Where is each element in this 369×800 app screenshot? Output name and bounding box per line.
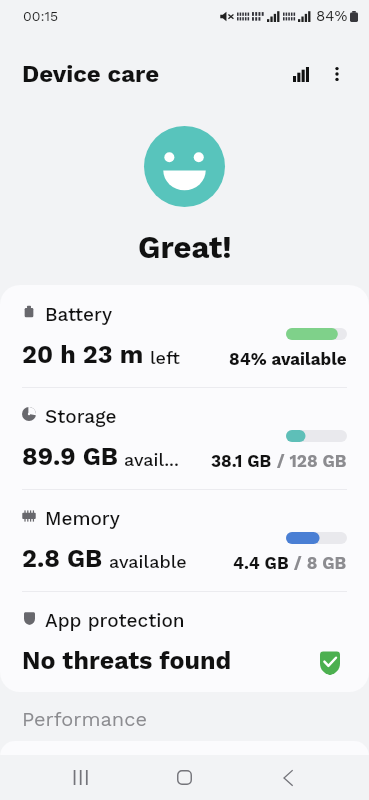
staticText: available (109, 551, 187, 572)
staticText: Memory (45, 507, 120, 529)
button[interactable]: App protection details (0, 591, 369, 692)
button[interactable]: Storage details (0, 387, 369, 489)
button[interactable]: Home (152, 755, 217, 798)
staticText: Storage (45, 405, 117, 427)
staticText: App protection (45, 609, 185, 631)
button[interactable]: Battery details (0, 285, 369, 387)
button[interactable]: Recent apps (48, 755, 113, 798)
staticText: 84% available (229, 349, 347, 369)
staticText: / 8 GB (289, 553, 347, 573)
staticText: Great! (138, 229, 232, 265)
staticText: 20 h 23 m (22, 340, 144, 369)
button[interactable]: More options (319, 56, 355, 92)
staticText: No threats found (22, 646, 232, 675)
staticText: avail... (124, 449, 179, 470)
button[interactable]: Memory details (0, 489, 369, 591)
staticText: Performance (22, 707, 147, 730)
staticText: 00:15 (23, 8, 59, 24)
staticText: Device care (22, 60, 160, 88)
button[interactable]: Back (255, 755, 320, 798)
staticText: / 128 GB (272, 451, 347, 471)
staticText: left (150, 347, 180, 368)
staticText: 38.1 GB (211, 451, 272, 471)
button[interactable]: Usage statistics (283, 56, 319, 92)
staticText: 84% (316, 7, 348, 25)
staticText: 4.4 GB (233, 553, 289, 573)
staticText: 89.9 GB (22, 442, 118, 471)
staticText: Battery (45, 303, 112, 325)
staticText: 2.8 GB (22, 544, 103, 573)
